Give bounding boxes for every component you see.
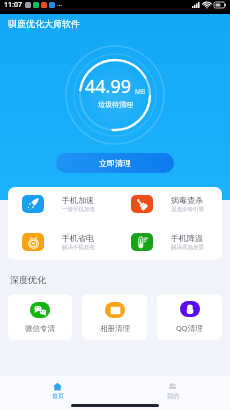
staticText: 首页 <box>52 392 64 400</box>
button[interactable]: 手机加速 <box>22 195 115 213</box>
staticText: 微信专清 <box>25 324 55 333</box>
button[interactable]: 病毒查杀 <box>131 195 222 213</box>
button[interactable]: 相册清理 <box>82 294 147 340</box>
staticText: 病毒查杀 <box>171 195 203 205</box>
staticText: 手机降温 <box>171 233 203 243</box>
button[interactable]: 首页 <box>0 382 115 400</box>
staticText: 立即清理 <box>99 158 131 168</box>
staticText: 深度杀毒引擎 <box>171 206 204 213</box>
button[interactable]: 手机降温 <box>131 233 222 251</box>
button[interactable]: 立即清理 <box>56 153 174 173</box>
staticText: 一键手机加速 <box>62 206 95 213</box>
staticText: 手机加速 <box>62 195 94 205</box>
staticText: 手机省电 <box>62 233 94 243</box>
button[interactable]: QQ清理 <box>157 294 222 340</box>
staticText: 11:07 <box>4 0 22 10</box>
button[interactable]: 微信专清 <box>8 294 72 340</box>
staticText: 驯鹿优化大师软件 <box>8 18 80 29</box>
staticText: 解决手机耗电 <box>62 244 95 251</box>
staticText: 44.99 <box>85 74 132 99</box>
staticText: 解决高温发烫 <box>171 244 204 251</box>
staticText: 垃圾待清理 <box>98 100 133 109</box>
button[interactable]: 我的 <box>115 382 230 400</box>
staticText: 相册清理 <box>100 324 130 333</box>
staticText: 我的 <box>167 392 179 400</box>
staticText: MB <box>135 87 146 96</box>
staticText: QQ清理 <box>176 323 203 333</box>
button[interactable]: 手机省电 <box>22 233 115 251</box>
staticText: 深度优化 <box>10 274 46 285</box>
